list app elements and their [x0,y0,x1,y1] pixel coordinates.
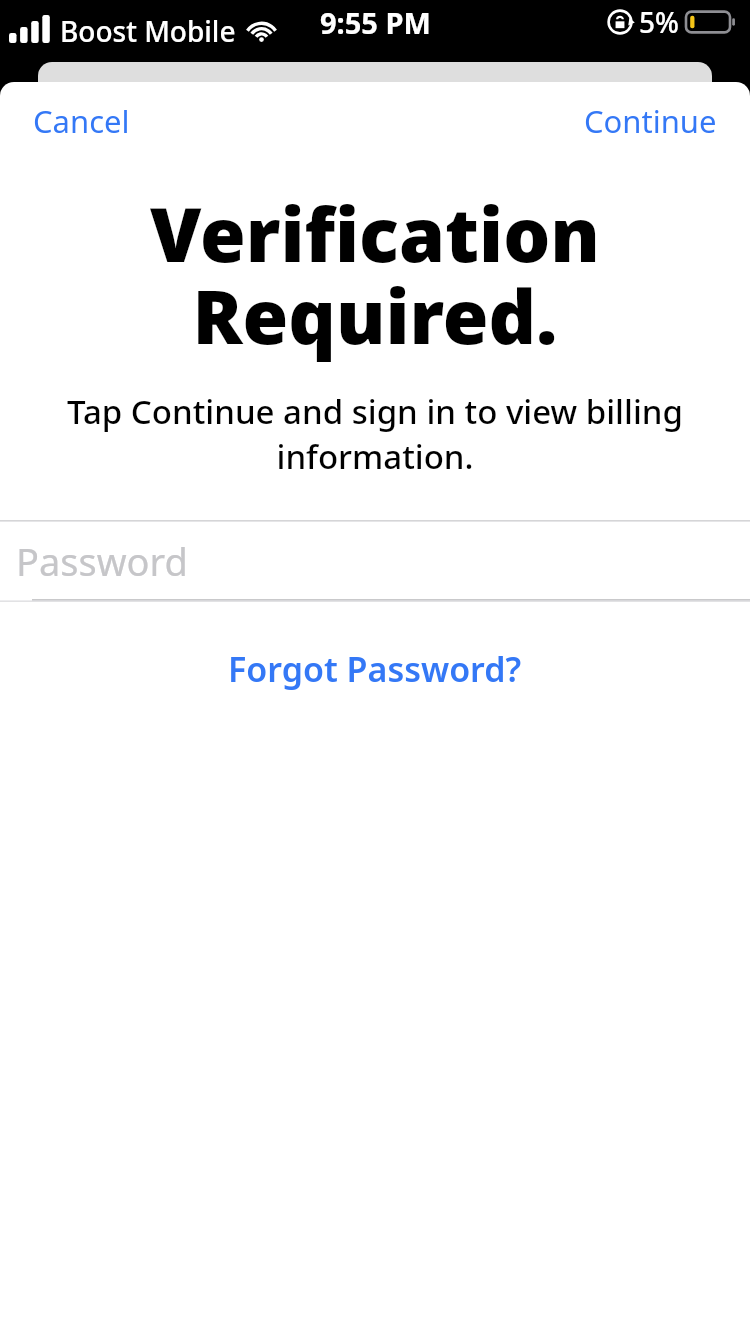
staticText: 9:55 PM [320,3,431,42]
staticText: Boost Mobile [60,12,236,50]
staticText: 5% [639,3,679,41]
staticText: Cancel [33,100,130,142]
staticText: Continue [584,100,717,142]
button[interactable]: Password [0,520,750,602]
staticText: Forgot Password? [228,646,522,692]
button[interactable]: Continue [569,92,732,150]
button[interactable]: Forgot Password? [210,638,540,700]
button[interactable]: Cancel [18,92,145,150]
staticText: Tap Continue and sign in to view billing… [62,389,688,479]
staticText: Password [16,535,188,587]
staticText: Verification Required. [20,183,730,365]
